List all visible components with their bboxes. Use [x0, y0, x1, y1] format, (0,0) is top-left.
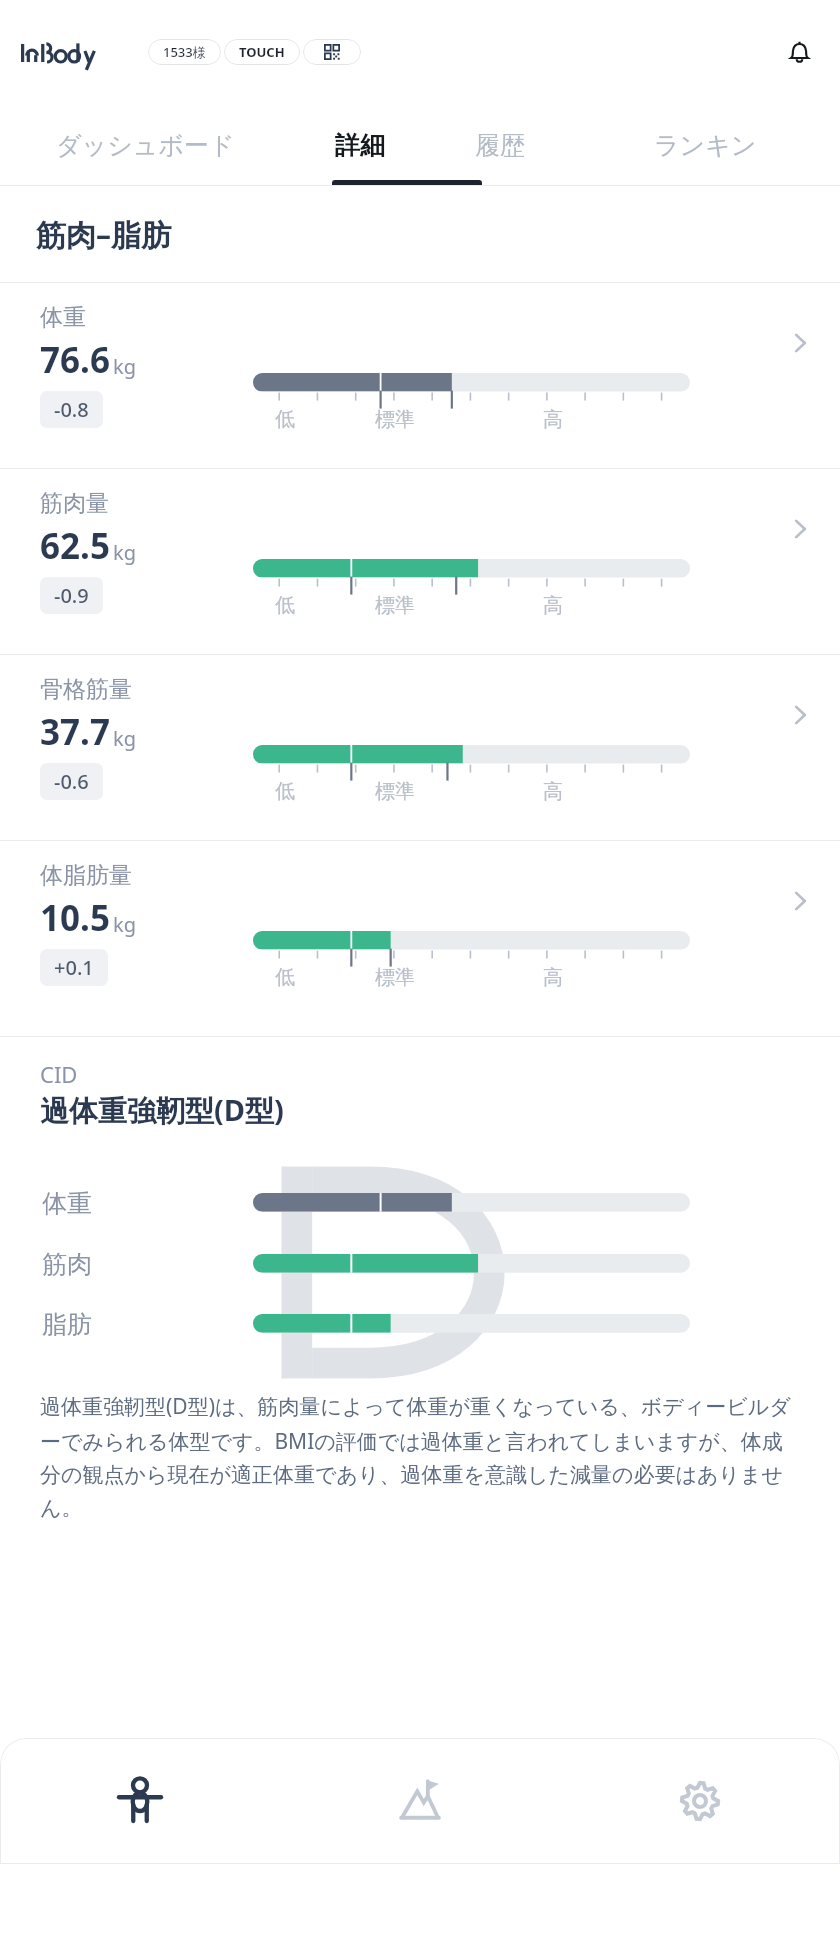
- button[interactable]: 体脂肪量: [0, 841, 840, 1026]
- staticText: +0.1: [54, 954, 94, 981]
- button[interactable]: 骨格筋量: [0, 655, 840, 840]
- staticText: ダッシュボード: [56, 130, 235, 161]
- staticText: 標準: [375, 593, 415, 618]
- other: Details: [788, 889, 812, 913]
- staticText: 10.5: [40, 894, 110, 942]
- staticText: 標準: [375, 407, 415, 432]
- other: Details: [788, 331, 812, 355]
- staticText: kg: [113, 539, 136, 566]
- staticText: CID: [40, 1059, 78, 1089]
- staticText: 体脂肪量: [40, 861, 132, 890]
- staticText: 過体重強靭型(D型)は、筋肉量によって体重が重くなっている、ボディービルダーでみ…: [40, 1392, 800, 1521]
- button[interactable]: ランキン: [570, 104, 840, 186]
- button[interactable]: TOUCH: [224, 39, 300, 65]
- button[interactable]: Notifications: [783, 36, 815, 68]
- button[interactable]: 1533様: [148, 39, 221, 65]
- staticText: 過体重強靭型(D型): [40, 1090, 284, 1130]
- button[interactable]: 履歴: [430, 104, 570, 186]
- staticText: 1533様: [163, 43, 206, 61]
- staticText: ランキン: [654, 130, 757, 161]
- staticText: -0.9: [54, 582, 89, 609]
- staticText: kg: [113, 725, 136, 752]
- staticText: -0.8: [54, 396, 89, 423]
- staticText: 低: [275, 593, 295, 618]
- staticText: 骨格筋量: [40, 675, 132, 704]
- other: Details: [788, 703, 812, 727]
- button[interactable]: 筋肉量: [0, 469, 840, 654]
- staticText: 標準: [375, 965, 415, 990]
- button[interactable]: ダッシュボード: [0, 104, 290, 186]
- button[interactable]: Goals: [280, 1738, 560, 1864]
- other: Details: [788, 517, 812, 541]
- staticText: 筋肉–脂肪: [36, 214, 171, 255]
- staticText: 37.7: [40, 708, 110, 756]
- staticText: 62.5: [40, 522, 110, 570]
- staticText: 高: [543, 593, 563, 618]
- staticText: 履歴: [475, 130, 525, 161]
- staticText: 76.6: [40, 336, 110, 384]
- staticText: 低: [275, 779, 295, 804]
- staticText: 高: [543, 965, 563, 990]
- staticText: 筋肉: [42, 1249, 92, 1280]
- staticText: 低: [275, 407, 295, 432]
- staticText: 筋肉量: [40, 489, 109, 518]
- button[interactable]: QR code: [303, 39, 361, 65]
- button[interactable]: Body composition: [0, 1738, 280, 1864]
- staticText: TOUCH: [239, 43, 285, 61]
- staticText: -0.6: [54, 768, 89, 795]
- button[interactable]: Settings: [560, 1738, 840, 1864]
- staticText: 体重: [42, 1188, 92, 1219]
- staticText: kg: [113, 911, 136, 938]
- staticText: 高: [543, 779, 563, 804]
- staticText: 低: [275, 965, 295, 990]
- staticText: 高: [543, 407, 563, 432]
- staticText: 体重: [40, 303, 86, 332]
- staticText: 詳細: [335, 130, 385, 161]
- button[interactable]: 詳細: [290, 104, 430, 186]
- staticText: 脂肪: [42, 1309, 92, 1340]
- staticText: 標準: [375, 779, 415, 804]
- staticText: kg: [113, 353, 136, 380]
- button[interactable]: 体重: [0, 283, 840, 468]
